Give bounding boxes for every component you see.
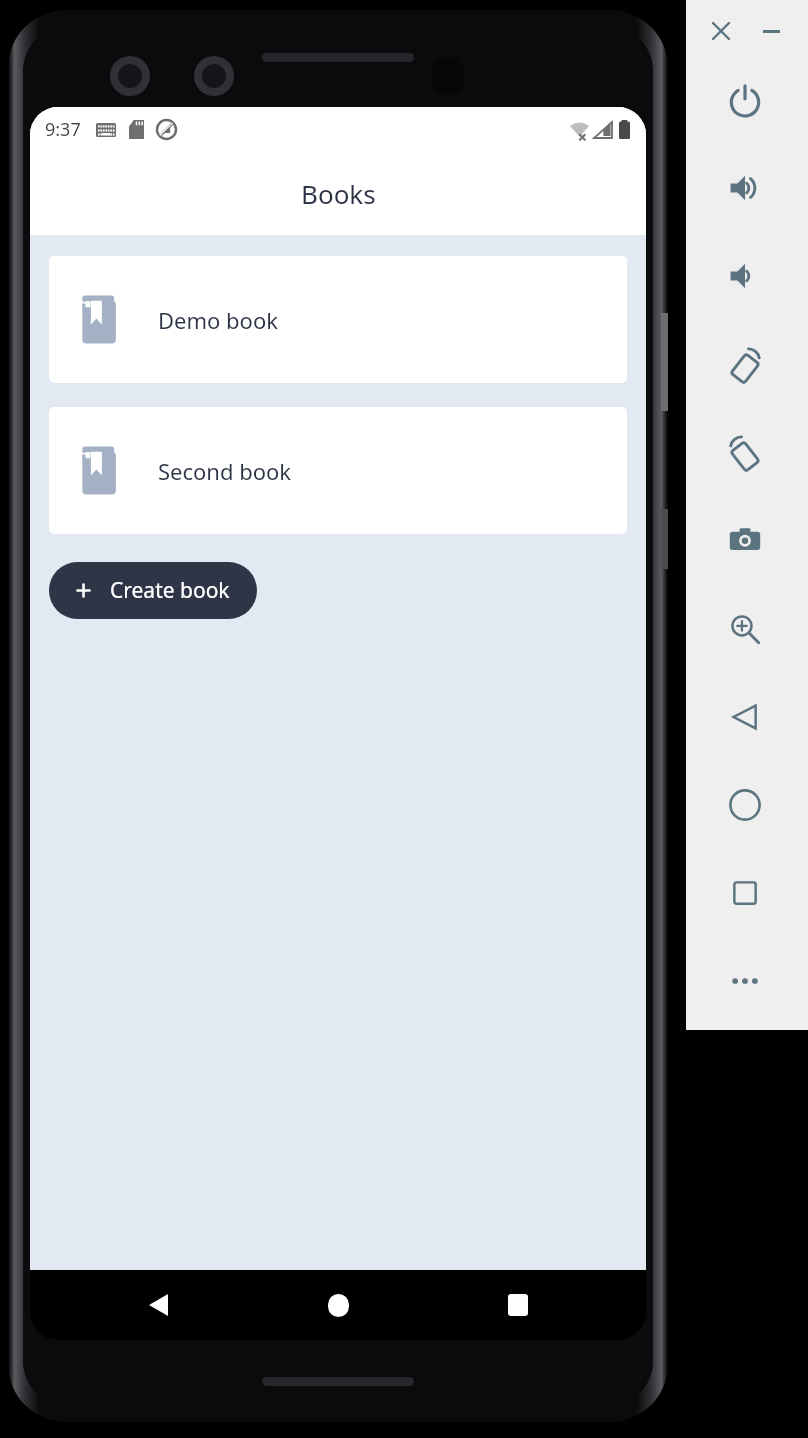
button[interactable]: Close <box>706 16 736 46</box>
button[interactable]: Screenshot <box>715 510 775 570</box>
button[interactable]: Home <box>310 1277 366 1333</box>
button[interactable]: Home <box>715 775 775 835</box>
button[interactable]: Second book <box>49 407 627 534</box>
button[interactable]: Rotate left <box>715 334 775 394</box>
staticText: 9:37 <box>45 117 81 142</box>
button[interactable]: Zoom <box>715 599 775 659</box>
button[interactable]: Back <box>715 687 775 747</box>
button[interactable]: Volume up <box>715 158 775 218</box>
staticText: Create book <box>110 576 230 605</box>
button[interactable]: Power <box>715 70 775 130</box>
button[interactable]: Recent apps <box>490 1277 546 1333</box>
button[interactable]: Rotate right <box>715 422 775 482</box>
button[interactable]: Volume down <box>715 246 775 306</box>
staticText: Books <box>301 176 376 211</box>
button[interactable]: Back <box>130 1277 186 1333</box>
staticText: Demo book <box>158 305 278 335</box>
staticText: Second book <box>158 456 292 486</box>
button[interactable]: Create book <box>49 562 257 619</box>
button[interactable]: Demo book <box>49 256 627 383</box>
button[interactable]: Overview <box>715 863 775 923</box>
button[interactable]: More <box>715 951 775 1011</box>
button[interactable]: Minimize <box>756 16 786 46</box>
